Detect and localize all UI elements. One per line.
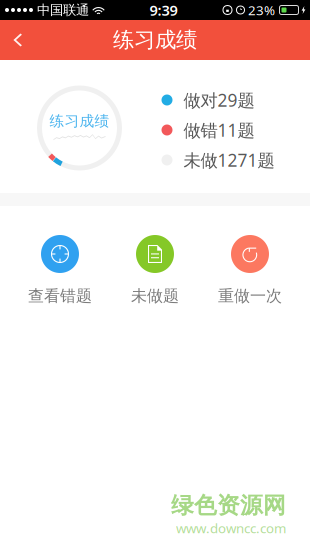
staticText: 练习成绩	[49, 112, 109, 130]
staticText: 绿色资源网	[171, 491, 286, 519]
button[interactable]: 查看错题	[20, 235, 100, 306]
staticText: 9:39	[149, 0, 177, 20]
staticText: 未做1271题	[183, 148, 274, 171]
staticText: 未做题	[131, 286, 179, 306]
staticText: 查看错题	[28, 286, 92, 306]
staticText: 做对29题	[183, 88, 254, 111]
staticText: 练习成绩	[113, 27, 197, 53]
staticText: www.downcc.com	[176, 519, 286, 537]
staticText: 23%	[248, 1, 275, 19]
button[interactable]: Back	[0, 20, 37, 60]
staticText: 做错11题	[183, 118, 254, 141]
staticText: 重做一次	[218, 286, 282, 306]
button[interactable]: 重做一次	[210, 235, 290, 306]
button[interactable]: 未做题	[115, 235, 195, 306]
staticText: 中国联通	[37, 2, 89, 18]
